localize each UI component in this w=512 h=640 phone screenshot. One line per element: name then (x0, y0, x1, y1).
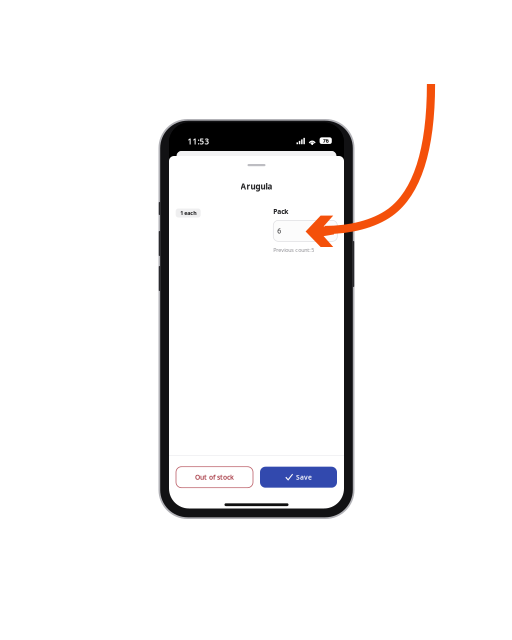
staticText: 76 (323, 137, 329, 144)
staticText: 1 each (180, 209, 196, 217)
staticText: Previous count: 5 (273, 246, 314, 253)
staticText: Out of stock (195, 473, 234, 482)
button[interactable]: Out of stock (176, 467, 253, 488)
staticText: 6 (277, 226, 281, 235)
staticText: 11:53 (187, 136, 209, 147)
button[interactable]: Save (260, 467, 337, 488)
staticText: Pack (273, 207, 288, 216)
staticText: Arugula (240, 181, 272, 192)
staticText: Save (296, 473, 312, 482)
